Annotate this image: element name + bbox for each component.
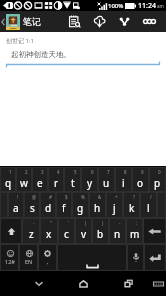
staticText: j — [113, 201, 116, 215]
staticText: 5 — [74, 169, 77, 175]
staticText: w — [20, 176, 28, 190]
button[interactable]: Backspace — [144, 219, 165, 243]
staticText: - — [119, 220, 121, 226]
staticText: s — [30, 201, 35, 215]
button[interactable]: - — [110, 219, 125, 243]
staticText: $ — [65, 194, 68, 200]
staticText: c — [64, 227, 69, 241]
staticText: 创世记 1:1 — [6, 37, 35, 45]
staticText: % — [81, 194, 85, 200]
staticText: & — [98, 194, 102, 200]
staticText: am — [157, 3, 164, 9]
staticText: f — [62, 201, 66, 215]
staticText: ' — [68, 220, 70, 226]
staticText: 0 — [158, 169, 161, 175]
button[interactable]: @ — [25, 193, 39, 217]
staticText: 7 — [107, 169, 110, 175]
button[interactable]: ! — [9, 193, 23, 217]
staticText: 100% — [108, 2, 124, 10]
button[interactable]: 7 — [99, 168, 114, 191]
staticText: y — [87, 176, 93, 190]
staticText: b — [97, 227, 104, 241]
button[interactable]: Space — [58, 245, 126, 270]
staticText: 8 — [124, 169, 127, 175]
staticText: a — [13, 201, 19, 215]
staticText: " — [50, 220, 52, 226]
staticText: EN — [25, 258, 33, 265]
button[interactable]: 5 — [65, 168, 80, 191]
button[interactable]: Language — [20, 245, 37, 270]
button[interactable]: 2 — [17, 168, 31, 191]
button[interactable]: / — [141, 193, 156, 217]
staticText: n — [114, 227, 121, 241]
staticText: 4 — [57, 169, 60, 175]
staticText: 6 — [91, 169, 94, 175]
staticText: 1 — [9, 169, 12, 175]
staticText: r — [54, 176, 59, 190]
button[interactable]: Search notes — [62, 11, 87, 32]
button[interactable]: Hide keyboard — [16, 271, 61, 296]
staticText: t — [71, 176, 75, 190]
button[interactable]: More options — [137, 11, 162, 32]
staticText: : — [136, 220, 138, 226]
staticText: u — [103, 176, 110, 190]
staticText: ! — [17, 194, 19, 200]
button[interactable]: ? — [124, 193, 139, 217]
button[interactable]: - — [23, 219, 39, 243]
staticText: + — [115, 194, 118, 200]
staticText: l — [147, 201, 150, 215]
button[interactable]: : — [127, 219, 142, 243]
button[interactable]: 9 — [133, 168, 148, 191]
staticText: 起初神创造天地。 — [11, 50, 71, 59]
staticText: 9 — [141, 169, 144, 175]
staticText: - — [33, 220, 35, 226]
button[interactable]: + — [107, 193, 122, 217]
button[interactable]: Symbols — [1, 245, 18, 270]
button[interactable]: Enter — [145, 245, 165, 270]
button[interactable]: Shift — [1, 219, 21, 243]
staticText: , — [47, 258, 49, 265]
button[interactable]: ) — [93, 219, 108, 243]
staticText: @ — [32, 194, 37, 200]
button[interactable]: Switch keyboard — [151, 271, 166, 296]
button[interactable]: 6 — [82, 168, 97, 191]
staticText: ? — [133, 194, 135, 200]
button[interactable]: Download notes — [87, 11, 112, 32]
button[interactable]: 0 — [150, 168, 165, 191]
button[interactable]: 8 — [116, 168, 131, 191]
staticText: q — [5, 176, 12, 190]
button[interactable]: Share — [112, 11, 137, 32]
button[interactable]: 1 — [1, 168, 15, 191]
staticText: 3 — [41, 169, 44, 175]
button[interactable]: % — [73, 193, 88, 217]
staticText: x — [46, 227, 52, 241]
staticText: z — [29, 227, 34, 241]
button[interactable]: & — [90, 193, 105, 217]
staticText: 2 — [25, 169, 28, 175]
staticText: / — [150, 194, 152, 200]
button[interactable]: Settings — [39, 245, 56, 270]
staticText: p — [154, 176, 161, 190]
button[interactable]: Voice input — [128, 245, 143, 270]
staticText: # — [49, 194, 52, 200]
button[interactable]: Home — [61, 271, 106, 296]
button[interactable]: ' — [59, 219, 74, 243]
button[interactable]: 3 — [33, 168, 47, 191]
staticText: m — [130, 227, 140, 241]
staticText: h — [94, 201, 101, 215]
button[interactable]: # — [41, 193, 55, 217]
staticText: i — [122, 176, 125, 190]
staticText: g — [77, 201, 84, 215]
button[interactable]: 4 — [49, 168, 63, 191]
staticText: d — [45, 201, 52, 215]
button[interactable]: Back — [0, 11, 6, 32]
button[interactable]: ( — [76, 219, 91, 243]
staticText: o — [137, 176, 144, 190]
button[interactable]: $ — [57, 193, 71, 217]
staticText: ( — [85, 220, 87, 226]
staticText: 12# — [5, 258, 15, 265]
button[interactable]: " — [41, 219, 57, 243]
button[interactable]: Recent apps — [106, 271, 151, 296]
staticText: v — [81, 227, 87, 241]
staticText: 笔记 — [23, 16, 41, 27]
